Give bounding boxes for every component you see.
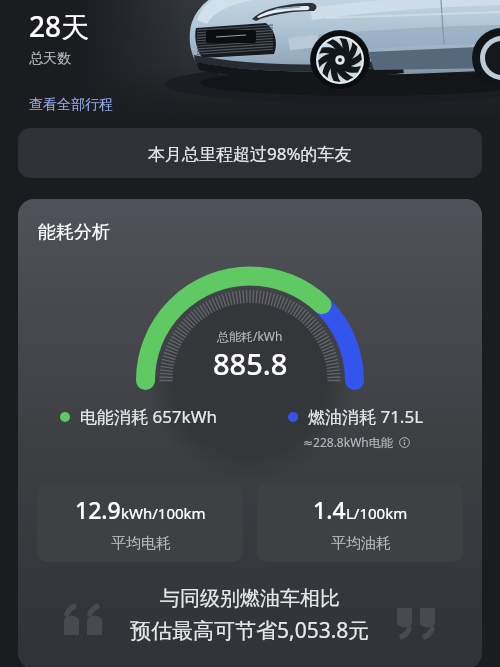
staticText: 总天数	[29, 50, 71, 68]
staticText: 与同级别燃油车相比	[160, 586, 340, 611]
button[interactable]: 12.9	[37, 484, 243, 562]
staticText: 查看全部行程	[29, 96, 113, 114]
staticText: 总能耗/kWh	[217, 328, 283, 344]
staticText: 平均电耗	[111, 534, 171, 553]
staticText: 电能消耗 657kWh	[80, 405, 217, 428]
staticText: 1.4	[313, 494, 346, 525]
staticText: 28天	[29, 7, 90, 45]
button[interactable]: 1.4	[257, 484, 463, 562]
staticText: kWh/100km	[121, 503, 206, 523]
staticText: 平均油耗	[331, 534, 391, 553]
staticText: 预估最高可节省5,053.8元	[130, 616, 370, 645]
button[interactable]: 查看全部行程	[29, 96, 113, 114]
staticText: 燃油消耗 71.5L	[308, 405, 424, 428]
staticText: 能耗分析	[38, 221, 110, 244]
staticText: ≈228.8kWh电能	[303, 434, 393, 450]
other: More info	[399, 437, 410, 448]
staticText: 885.8	[213, 344, 288, 383]
button[interactable]: 本月总里程超过98%的车友	[18, 128, 482, 178]
staticText: 本月总里程超过98%的车友	[148, 142, 352, 165]
staticText: 12.9	[75, 494, 121, 525]
staticText: L/100km	[346, 503, 408, 523]
